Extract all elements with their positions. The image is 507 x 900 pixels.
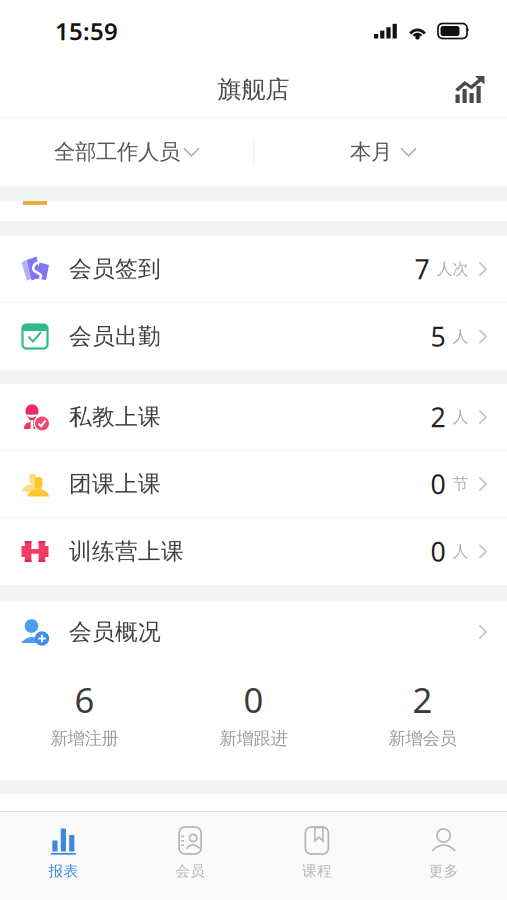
staticText: 报表 [48,862,78,880]
button[interactable]: 训练营上课 [0,518,507,585]
staticText: 会员出勤 [69,323,161,350]
staticText: 人 [452,542,468,561]
staticText: 新增注册 [50,728,118,749]
staticText: 团课上课 [69,470,161,498]
button[interactable]: 本月 [254,118,507,186]
staticText: 5 [430,319,445,354]
staticText: 会员签到 [69,255,161,283]
button[interactable]: 更多 [380,812,507,900]
staticText: 旗舰店 [217,75,289,104]
staticText: 15:59 [55,15,118,47]
staticText: 全部工作人员 [54,139,180,165]
button[interactable]: Statistics [441,62,499,117]
staticText: 新增跟进 [219,728,287,749]
button[interactable]: 课程 [253,812,380,900]
staticText: 7 [414,251,429,287]
button[interactable]: 会员概况 [0,601,507,663]
staticText: 6 [74,676,94,722]
staticText: 人 [452,407,468,427]
button[interactable]: 团课上课 [0,451,507,518]
staticText: 0 [243,676,263,722]
button[interactable]: 会员出勤 [0,303,507,370]
staticText: 人 [452,327,468,346]
button[interactable]: 私教上课 [0,384,507,451]
staticText: 训练营上课 [69,538,184,565]
staticText: 会员 [175,862,205,880]
staticText: 课程 [302,862,332,880]
staticText: 会员概况 [69,618,161,646]
staticText: 人次 [436,259,468,279]
staticText: 2 [430,399,445,435]
button[interactable]: 报表 [0,812,127,900]
staticText: 0 [430,534,445,569]
staticText: 新增会员 [388,728,456,749]
staticText: 本月 [350,139,392,165]
staticText: 0 [430,466,445,502]
button[interactable]: 会员 [127,812,254,900]
staticText: 节 [452,474,468,494]
button[interactable]: 会员签到 [0,236,507,303]
button[interactable]: 全部工作人员 [0,118,254,186]
staticText: 2 [412,676,432,722]
staticText: 更多 [429,862,459,880]
staticText: 私教上课 [69,403,161,431]
